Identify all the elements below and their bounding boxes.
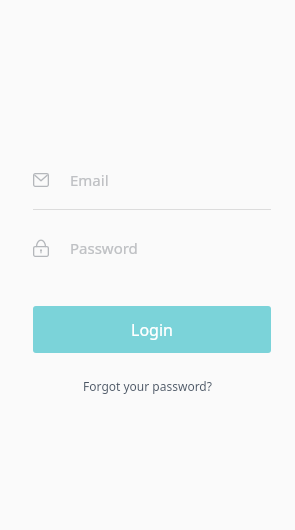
other: Password [33,239,49,257]
staticText: Password [70,238,138,258]
staticText: Login [131,319,173,341]
button[interactable]: Login [33,306,271,353]
button[interactable]: Email [33,160,271,200]
other: Email [33,173,49,187]
button[interactable]: Password [33,228,271,268]
staticText: Email [70,170,109,190]
button[interactable]: Forgot your password? [0,374,295,398]
staticText: Forgot your password? [83,378,212,394]
